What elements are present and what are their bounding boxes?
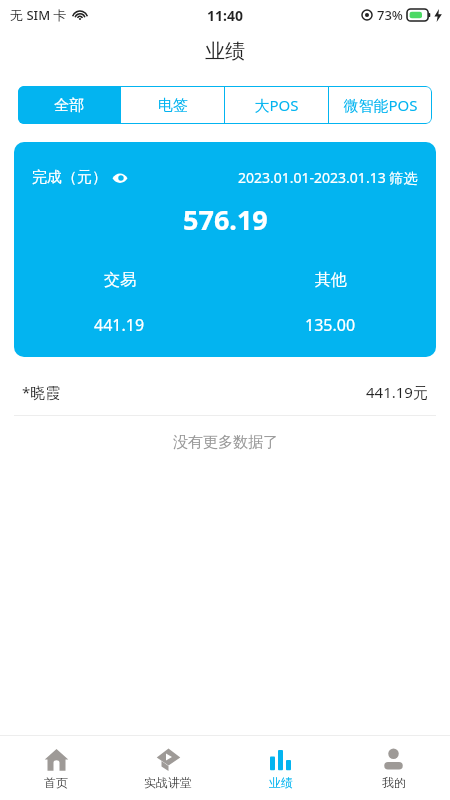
button[interactable]: 实战讲堂 xyxy=(112,736,224,800)
staticText: 微智能POS xyxy=(343,95,418,115)
staticText: 576.19 xyxy=(183,201,268,238)
staticText: 2023.01.01-2023.01.13 筛选 xyxy=(238,168,418,187)
other: Toggle amount visibility xyxy=(111,169,129,187)
button[interactable]: 全部 xyxy=(18,86,120,124)
staticText: 无 SIM 卡 xyxy=(10,6,67,24)
staticText: 交易 xyxy=(104,270,136,290)
staticText: 首页 xyxy=(44,775,68,790)
button[interactable]: 电签 xyxy=(121,86,224,124)
staticText: 我的 xyxy=(382,775,406,790)
button[interactable]: 2023.01.01-2023.01.13 筛选 xyxy=(238,168,418,187)
staticText: 大POS xyxy=(254,95,299,115)
staticText: *晓霞 xyxy=(22,382,61,402)
staticText: 业绩 xyxy=(205,39,245,64)
button[interactable]: *晓霞 xyxy=(0,369,450,415)
button[interactable]: 完成（元） xyxy=(32,168,129,187)
button[interactable]: 大POS xyxy=(225,86,328,124)
staticText: 实战讲堂 xyxy=(144,775,192,790)
staticText: 441.19元 xyxy=(366,382,428,402)
staticText: 完成（元） xyxy=(32,168,107,187)
staticText: 11:40 xyxy=(207,6,243,25)
staticText: 其他 xyxy=(315,270,347,290)
button[interactable]: 微智能POS xyxy=(329,86,432,124)
staticText: 电签 xyxy=(158,96,188,115)
button[interactable]: 首页 xyxy=(0,736,112,800)
staticText: 业绩 xyxy=(269,775,293,790)
staticText: 135.00 xyxy=(305,314,356,336)
staticText: 441.19 xyxy=(94,314,145,336)
button[interactable]: 我的 xyxy=(337,736,450,800)
button[interactable]: 业绩 xyxy=(224,736,337,800)
staticText: 全部 xyxy=(54,96,84,115)
staticText: 73% xyxy=(377,6,403,24)
staticText: 没有更多数据了 xyxy=(173,433,278,452)
